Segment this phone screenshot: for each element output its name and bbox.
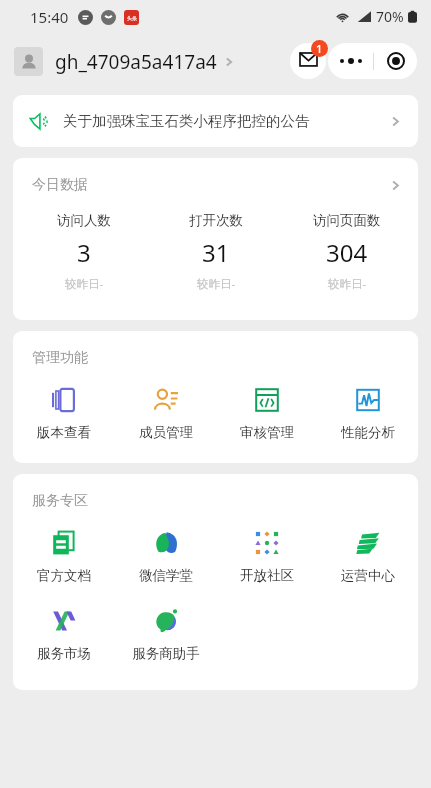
- button[interactable]: 开放社区: [216, 526, 317, 586]
- button[interactable]: 成员管理: [115, 383, 216, 443]
- staticText: 性能分析: [341, 424, 395, 441]
- staticText: 较昨日-: [197, 276, 236, 292]
- staticText: 服务市场: [37, 645, 91, 662]
- staticText: 打开次数: [189, 212, 243, 229]
- button[interactable]: 服务商助手: [115, 604, 216, 664]
- staticText: 今日数据: [32, 176, 88, 194]
- staticText: 3: [77, 236, 91, 269]
- button[interactable]: 性能分析: [317, 383, 418, 443]
- staticText: 头条: [127, 15, 137, 21]
- staticText: 较昨日-: [65, 276, 104, 292]
- staticText: 访问页面数: [313, 212, 381, 229]
- staticText: 管理功能: [32, 349, 88, 367]
- button[interactable]: Close: [374, 43, 417, 79]
- staticText: 31: [202, 236, 230, 269]
- staticText: 较昨日-: [328, 276, 367, 292]
- button[interactable]: gh_4709a5a417a4: [14, 43, 235, 80]
- button[interactable]: Messages: [290, 43, 326, 79]
- staticText: 开放社区: [240, 567, 294, 584]
- staticText: 审核管理: [240, 424, 294, 441]
- staticText: 服务商助手: [132, 645, 200, 662]
- staticText: 成员管理: [139, 424, 193, 441]
- button[interactable]: 审核管理: [216, 383, 317, 443]
- staticText: 304: [326, 236, 368, 269]
- button[interactable]: More options: [328, 43, 373, 79]
- staticText: 访问人数: [57, 212, 111, 229]
- button[interactable]: 运营中心: [317, 526, 418, 586]
- button[interactable]: 版本查看: [13, 383, 115, 443]
- staticText: 70%: [376, 7, 404, 26]
- button[interactable]: 关于加强珠宝玉石类小程序把控的公告: [13, 95, 418, 147]
- staticText: 服务专区: [32, 492, 88, 510]
- button[interactable]: 服务市场: [13, 604, 115, 664]
- staticText: 微信学堂: [139, 567, 193, 584]
- button[interactable]: 微信学堂: [115, 526, 216, 586]
- button[interactable]: 官方文档: [13, 526, 115, 586]
- staticText: 15:40: [30, 7, 69, 27]
- button[interactable]: 今日数据: [13, 158, 418, 198]
- staticText: 版本查看: [37, 424, 91, 441]
- staticText: 运营中心: [341, 567, 395, 584]
- staticText: 1: [316, 41, 323, 56]
- staticText: gh_4709a5a417a4: [55, 49, 217, 75]
- staticText: 官方文档: [37, 567, 91, 584]
- staticText: 关于加强珠宝玉石类小程序把控的公告: [63, 112, 389, 130]
